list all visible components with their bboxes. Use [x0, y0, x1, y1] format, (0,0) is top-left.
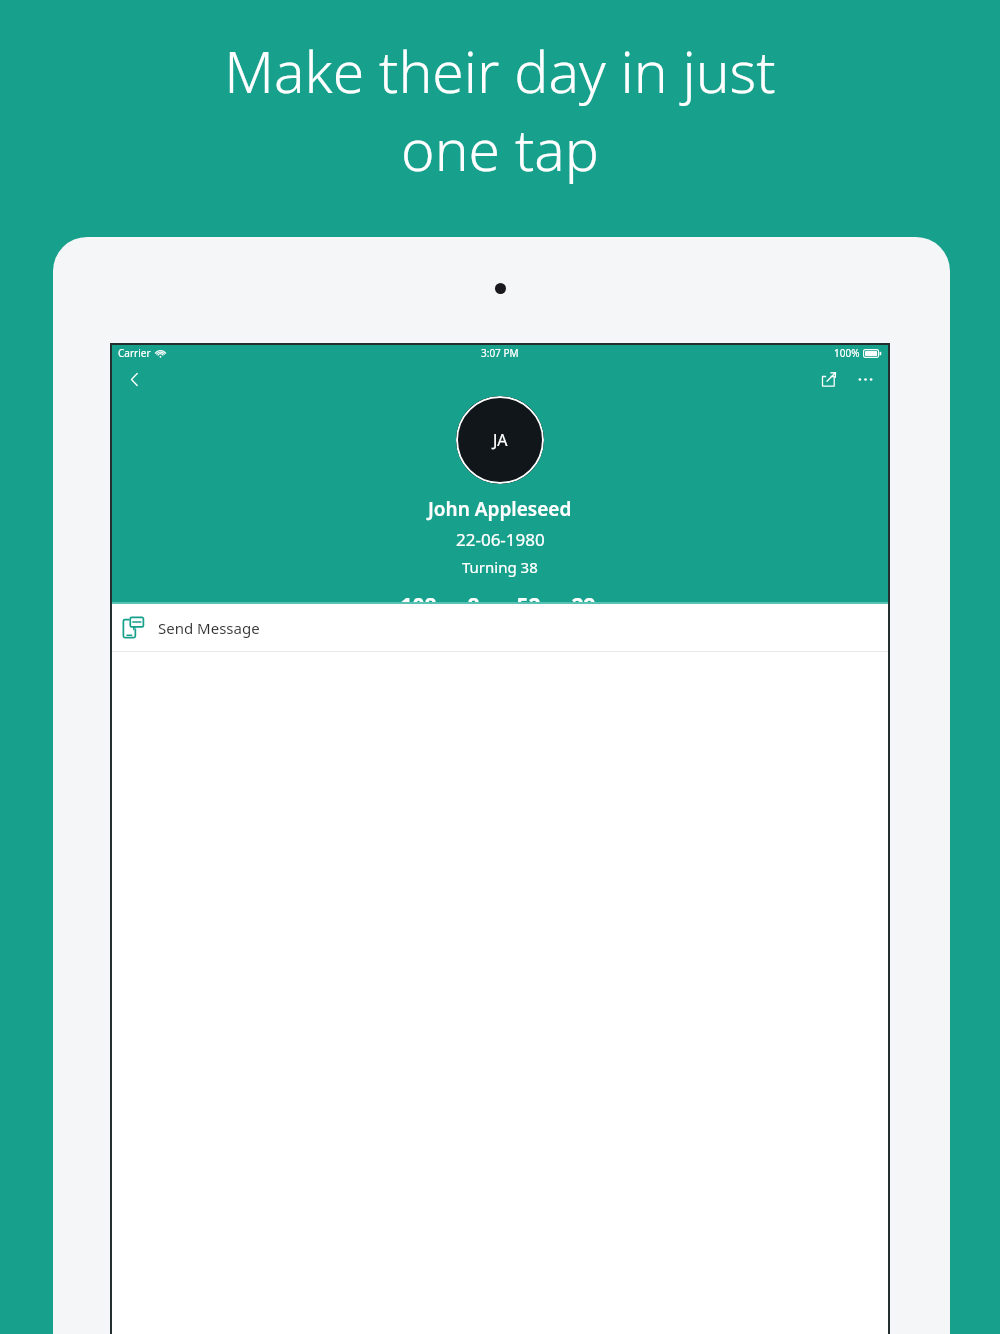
button[interactable]: More options	[851, 365, 879, 393]
button[interactable]: Send Message	[110, 604, 890, 651]
staticText: one tap	[401, 110, 599, 188]
staticText: John Appleseed	[428, 496, 572, 522]
staticText: JA	[493, 429, 508, 451]
staticText: 3:07 PM	[481, 346, 519, 360]
staticText: 22-06-1980	[456, 528, 545, 551]
button[interactable]: Share	[814, 365, 842, 393]
staticText: 8	[467, 591, 480, 604]
staticText: Carrier	[118, 346, 151, 360]
staticText: 100%	[834, 346, 860, 360]
staticText: Make their day in just	[224, 32, 776, 110]
staticText: Turning 38	[462, 557, 538, 577]
staticText: 52	[516, 591, 541, 604]
button[interactable]: Contact avatar JA	[456, 396, 544, 484]
staticText: 108	[400, 591, 437, 604]
staticText: 29	[571, 591, 596, 604]
staticText: Send Message	[158, 618, 260, 638]
button[interactable]: Back	[119, 364, 149, 394]
